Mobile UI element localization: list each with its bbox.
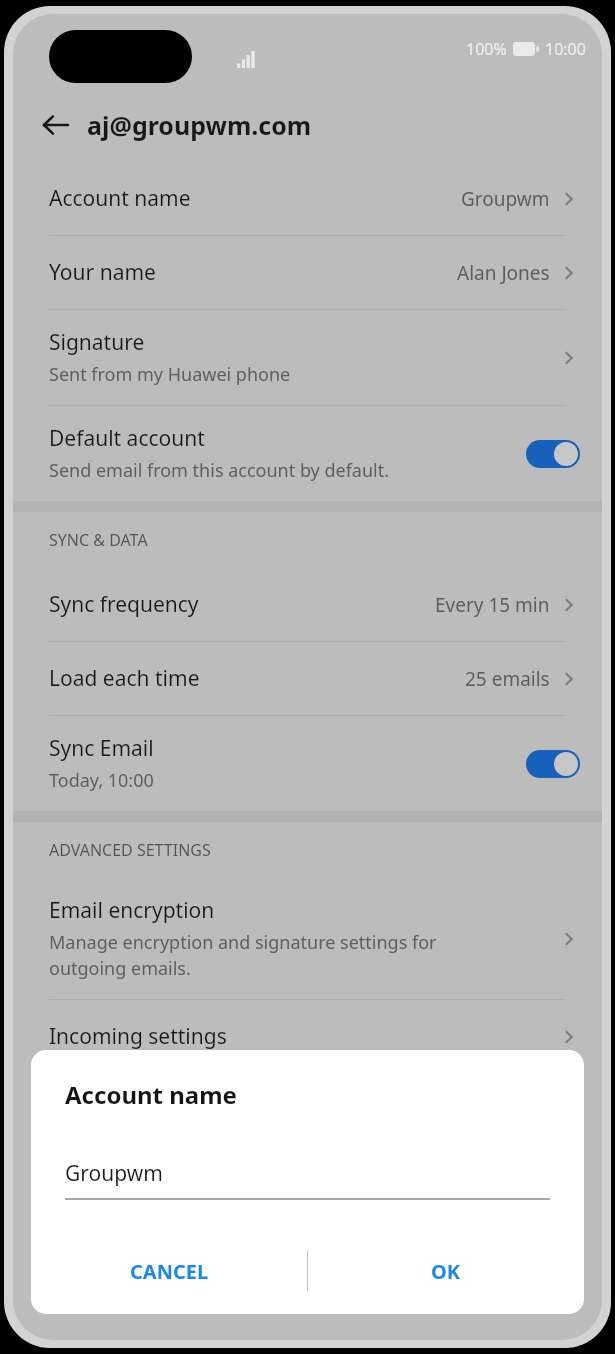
staticText: Today, 10:00: [49, 768, 154, 793]
button[interactable]: Account name: [13, 162, 602, 235]
staticText: Every 15 min: [435, 592, 550, 618]
staticText: aj@groupwm.com: [87, 108, 312, 142]
button[interactable]: Toggle Sync Email: [526, 750, 580, 778]
staticText: 25 emails: [465, 666, 550, 692]
staticText: Your name: [49, 258, 156, 287]
button[interactable]: Signature: [13, 310, 602, 405]
staticText: OK: [431, 1258, 461, 1285]
staticText: CANCEL: [130, 1258, 209, 1285]
staticText: 100%: [466, 38, 507, 60]
staticText: Sync frequency: [49, 590, 199, 619]
staticText: Incoming settings: [49, 1022, 227, 1051]
button[interactable]: Email encryption: [13, 878, 602, 999]
button[interactable]: Incoming settings: [13, 1000, 602, 1073]
staticText: 10:00: [545, 38, 586, 60]
staticText: Groupwm: [461, 186, 550, 212]
staticText: Email encryption: [49, 896, 215, 925]
button[interactable]: Back: [31, 101, 79, 149]
button[interactable]: Sync frequency: [13, 568, 602, 641]
button[interactable]: Groupwm: [65, 1159, 550, 1200]
button[interactable]: CANCEL: [31, 1232, 307, 1310]
button[interactable]: Sync Email: [13, 716, 602, 811]
button[interactable]: Toggle Default account: [526, 440, 580, 468]
staticText: Groupwm: [65, 1159, 163, 1188]
staticText: Send email from this account by default.: [49, 458, 390, 483]
staticText: Alan Jones: [457, 260, 550, 286]
staticText: Default account: [49, 424, 205, 453]
staticText: Account name: [65, 1078, 237, 1111]
staticText: SYNC & DATA: [49, 529, 148, 551]
staticText: Signature: [49, 328, 145, 357]
staticText: Sent from my Huawei phone: [49, 362, 291, 387]
staticText: ADVANCED SETTINGS: [49, 839, 211, 861]
button[interactable]: OK: [307, 1232, 584, 1310]
staticText: Sync Email: [49, 734, 154, 763]
button[interactable]: Your name: [13, 236, 602, 309]
button[interactable]: Load each time: [13, 642, 602, 715]
button[interactable]: Default account: [13, 406, 602, 501]
staticText: Account name: [49, 184, 191, 213]
staticText: Manage encryption and signature settings…: [49, 930, 437, 981]
staticText: Load each time: [49, 664, 200, 693]
